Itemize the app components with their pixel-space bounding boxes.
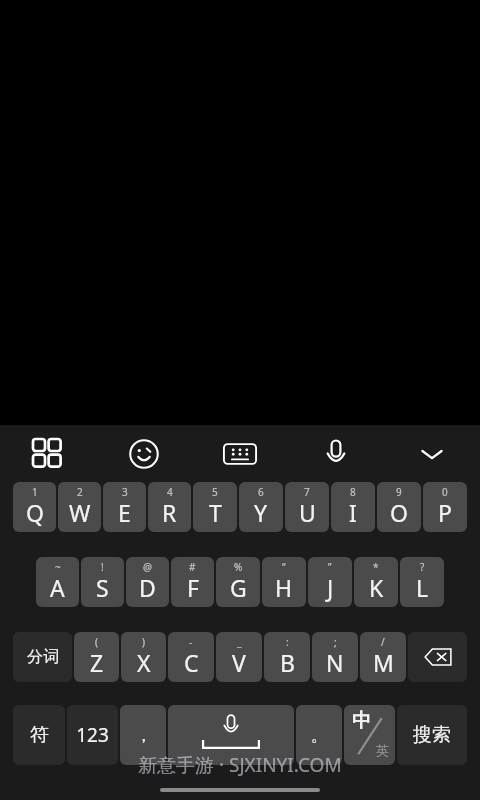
button[interactable]: ( (74, 632, 119, 682)
button[interactable]: - (168, 632, 214, 682)
staticText: “ (282, 560, 286, 574)
staticText: ( (95, 635, 98, 649)
button[interactable]: 8 (331, 482, 375, 532)
button[interactable]: ， (120, 705, 166, 765)
button[interactable]: 5 (193, 482, 237, 532)
staticText: R (162, 497, 177, 528)
staticText: O (390, 497, 408, 528)
button[interactable]: 3 (103, 482, 146, 532)
staticText: J (327, 572, 334, 603)
button[interactable]: * (354, 557, 398, 607)
button[interactable]: 7 (285, 482, 329, 532)
button[interactable]: 分词 (13, 632, 72, 682)
staticText: 中 (352, 709, 371, 733)
staticText: * (373, 560, 379, 574)
staticText: I (349, 497, 357, 528)
staticText: N (326, 647, 344, 678)
staticText: : (286, 635, 289, 649)
staticText: 8 (350, 485, 356, 499)
button[interactable]: @ (126, 557, 169, 607)
button[interactable]: / (360, 632, 406, 682)
staticText: # (189, 560, 196, 574)
staticText: Y (254, 497, 268, 528)
button[interactable]: Keyboard layouts (0, 425, 96, 482)
staticText: M (373, 647, 394, 678)
button[interactable]: % (216, 557, 260, 607)
button[interactable]: 2 (58, 482, 101, 532)
button[interactable]: _ (216, 632, 262, 682)
button[interactable]: 。 (296, 705, 342, 765)
staticText: K (369, 572, 384, 603)
staticText: 1 (32, 485, 38, 499)
staticText: D (139, 572, 156, 603)
staticText: W (69, 497, 91, 528)
staticText: E (118, 497, 131, 528)
staticText: B (280, 647, 295, 678)
button[interactable]: 9 (377, 482, 421, 532)
staticText: ; (334, 635, 337, 649)
button[interactable]: Space, voice input (168, 705, 294, 765)
staticText: ! (101, 560, 104, 574)
button[interactable]: ) (121, 632, 166, 682)
staticText: X (137, 647, 151, 678)
button[interactable]: : (264, 632, 310, 682)
staticText: S (96, 572, 109, 603)
button[interactable]: # (171, 557, 214, 607)
staticText: 9 (396, 485, 402, 499)
button[interactable]: 搜索 (397, 705, 467, 765)
button[interactable]: “ (262, 557, 306, 607)
staticText: ~ (55, 560, 61, 574)
staticText: P (438, 497, 452, 528)
staticText: H (275, 572, 293, 603)
staticText: 分词 (27, 647, 59, 667)
staticText: 符 (30, 723, 49, 747)
staticText: C (184, 647, 199, 678)
staticText: V (232, 647, 246, 678)
staticText: 7 (304, 485, 310, 499)
button[interactable]: ; (312, 632, 358, 682)
staticText: ” (328, 560, 332, 574)
button[interactable]: Chinese English toggle (344, 705, 395, 765)
button[interactable]: Keyboard (192, 425, 288, 482)
staticText: 5 (212, 485, 218, 499)
button[interactable]: ~ (36, 557, 79, 607)
staticText: 0 (442, 485, 448, 499)
staticText: L (416, 572, 429, 603)
staticText: ? (420, 560, 425, 574)
staticText: 3 (122, 485, 128, 499)
button[interactable]: 0 (423, 482, 467, 532)
button[interactable]: 1 (13, 482, 56, 532)
staticText: / (381, 635, 385, 649)
staticText: 4 (167, 485, 173, 499)
button[interactable]: 符 (13, 705, 65, 765)
staticText: ) (142, 635, 145, 649)
staticText: 新意手游 · SJXINYI.COM (138, 752, 342, 778)
button[interactable]: Emoji (96, 425, 192, 482)
staticText: - (189, 635, 193, 649)
button[interactable]: ? (400, 557, 444, 607)
staticText: A (50, 572, 65, 603)
staticText: _ (237, 635, 242, 649)
staticText: 6 (258, 485, 264, 499)
button[interactable]: 123 (67, 705, 118, 765)
staticText: 123 (76, 722, 109, 748)
button[interactable]: Backspace (408, 632, 467, 682)
button[interactable]: Voice input (288, 425, 384, 482)
button[interactable]: ! (81, 557, 124, 607)
button[interactable]: Hide keyboard (384, 425, 480, 482)
staticText: Z (90, 647, 104, 678)
staticText: U (299, 497, 316, 528)
button[interactable]: ” (308, 557, 352, 607)
staticText: @ (143, 560, 152, 574)
staticText: ， (135, 725, 152, 746)
staticText: 英 (376, 742, 389, 758)
button[interactable]: 6 (239, 482, 283, 532)
staticText: 2 (77, 485, 83, 499)
staticText: G (230, 572, 247, 603)
button[interactable]: 4 (148, 482, 191, 532)
staticText: % (234, 560, 243, 574)
staticText: 搜索 (413, 723, 451, 747)
staticText: F (187, 572, 199, 603)
staticText: 。 (311, 725, 328, 746)
staticText: T (209, 497, 222, 528)
